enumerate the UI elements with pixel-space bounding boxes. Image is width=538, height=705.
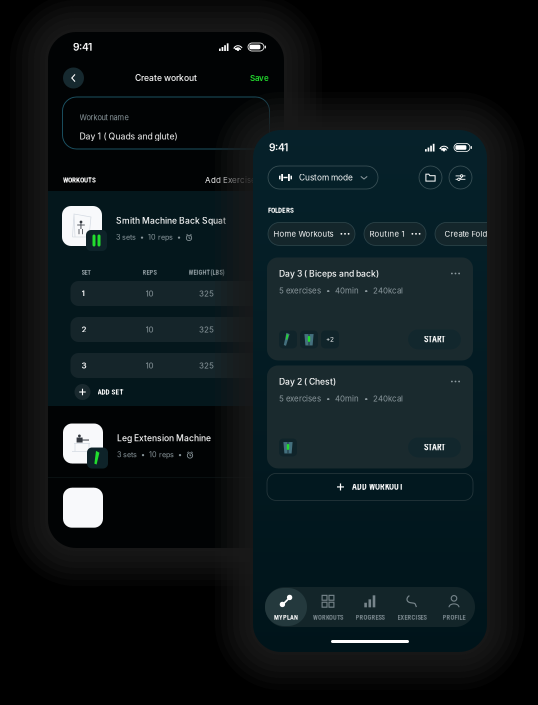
button[interactable]: Save	[248, 73, 269, 83]
button[interactable]: START	[408, 437, 461, 457]
staticText: ADD SET	[97, 388, 123, 396]
staticText: ADD WORKOUT	[352, 482, 403, 492]
button[interactable]: PROFILE	[433, 588, 475, 626]
button[interactable]: Folders	[419, 166, 442, 189]
staticText: 325	[199, 325, 214, 334]
staticText: 9:41	[73, 41, 92, 53]
staticText: Home Workouts	[273, 229, 333, 239]
staticText: 3 sets	[116, 233, 136, 241]
staticText: PROFILE	[442, 614, 465, 621]
button[interactable]: Custom mode	[268, 166, 378, 189]
staticText: 10 reps	[149, 450, 174, 459]
staticText: •	[364, 286, 368, 295]
staticText: Create workout	[135, 73, 197, 83]
staticText: Day 2 ( Chest)	[279, 376, 336, 387]
staticText: •	[326, 286, 330, 295]
button[interactable]: 1	[70, 281, 261, 306]
button[interactable]: Add Exercise	[205, 175, 256, 185]
staticText: 10 reps	[148, 233, 173, 241]
staticText: Add Exercise	[205, 175, 256, 185]
staticText: START	[424, 443, 445, 452]
staticText: •	[326, 394, 330, 403]
staticText: Workout name	[79, 113, 128, 122]
staticText: 10	[145, 361, 153, 370]
staticText: Custom mode	[299, 172, 353, 182]
button[interactable]: 2	[70, 317, 261, 342]
staticText: 325	[199, 289, 214, 298]
staticText: •	[141, 450, 145, 459]
button[interactable]: EXERCISES	[391, 588, 433, 626]
staticText: +2	[326, 336, 334, 343]
staticText: Save	[250, 73, 269, 83]
staticText: WORKOUTS	[63, 176, 96, 184]
staticText: 240kcal	[373, 286, 403, 295]
staticText: •	[140, 233, 144, 241]
staticText: •	[364, 394, 368, 403]
button[interactable]: More options	[450, 377, 461, 386]
staticText: Routine 1	[369, 229, 404, 239]
staticText: Day 3 ( Biceps and back)	[279, 268, 379, 279]
button[interactable]: ADD SET	[74, 384, 123, 400]
staticText: WEIGHT (LBS)	[188, 269, 224, 276]
staticText: 3 sets	[117, 450, 137, 459]
staticText: MY PLAN	[274, 614, 298, 621]
staticText: PROGRESS	[355, 614, 384, 621]
staticText: 10	[145, 325, 153, 334]
staticText: Smith Machine Back Squat	[116, 215, 226, 226]
staticText: Create Folder	[444, 229, 495, 239]
staticText: 10	[145, 289, 153, 298]
staticText: WORKOUTS	[313, 614, 343, 621]
button[interactable]: More options	[450, 269, 461, 278]
staticText: Leg Extension Machine	[117, 433, 211, 443]
staticText: START	[424, 335, 445, 344]
staticText: 5 exercises	[279, 394, 321, 403]
staticText: 1	[81, 289, 84, 298]
staticText: 240kcal	[373, 394, 403, 403]
staticText: •	[178, 450, 182, 459]
staticText: REPS	[142, 269, 156, 276]
staticText: 40min	[335, 394, 359, 403]
button[interactable]: Routine 1	[364, 222, 426, 245]
staticText: 325	[199, 361, 214, 370]
staticText: Day 1 ( Quads and glute)	[79, 131, 177, 141]
button[interactable]: Create Folder	[435, 222, 505, 245]
staticText: 2	[81, 325, 86, 334]
button[interactable]: Back	[63, 67, 84, 88]
staticText: 5 exercises	[279, 286, 321, 295]
staticText: •	[177, 233, 181, 241]
staticText: FOLDERS	[268, 206, 294, 214]
staticText: EXERCISES	[397, 614, 426, 621]
staticText: SET	[81, 269, 90, 276]
button[interactable]: START	[408, 329, 461, 349]
button[interactable]: 3	[70, 353, 261, 378]
button[interactable]: MY PLAN	[265, 588, 307, 626]
button[interactable]: Home Workouts	[268, 222, 355, 245]
button[interactable]: ADD WORKOUT	[267, 473, 473, 500]
staticText: 40min	[335, 286, 359, 295]
button[interactable]: WORKOUTS	[307, 588, 349, 626]
button[interactable]: Filter	[449, 166, 472, 189]
button[interactable]: PROGRESS	[349, 588, 391, 626]
staticText: 3	[81, 361, 86, 370]
staticText: 9:41	[269, 141, 288, 154]
